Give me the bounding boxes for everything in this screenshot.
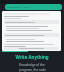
staticText: Write Anything [15, 54, 49, 60]
button[interactable]: Editor toolbar [5, 4, 62, 10]
staticText: program, the code [19, 68, 46, 72]
button[interactable] [2, 11, 61, 51]
button[interactable]: Write Anything [0, 54, 64, 60]
staticText: Knowledge of the [19, 63, 45, 67]
